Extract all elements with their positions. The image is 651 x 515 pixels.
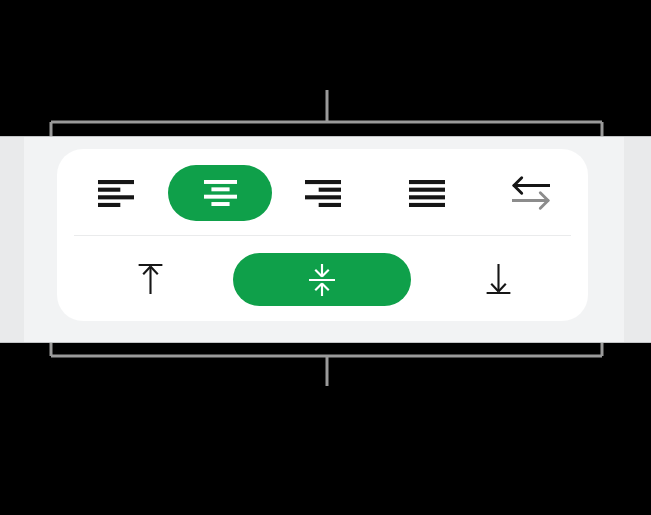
button[interactable]: Align middle <box>233 253 411 306</box>
button[interactable]: Align top <box>122 251 178 307</box>
button[interactable]: Align bottom <box>470 251 526 307</box>
button[interactable]: Align right <box>295 165 351 221</box>
button[interactable]: Text direction <box>503 165 559 221</box>
button[interactable]: Align center <box>168 165 272 221</box>
button[interactable]: Justify <box>399 165 455 221</box>
button[interactable]: Align left <box>88 165 144 221</box>
